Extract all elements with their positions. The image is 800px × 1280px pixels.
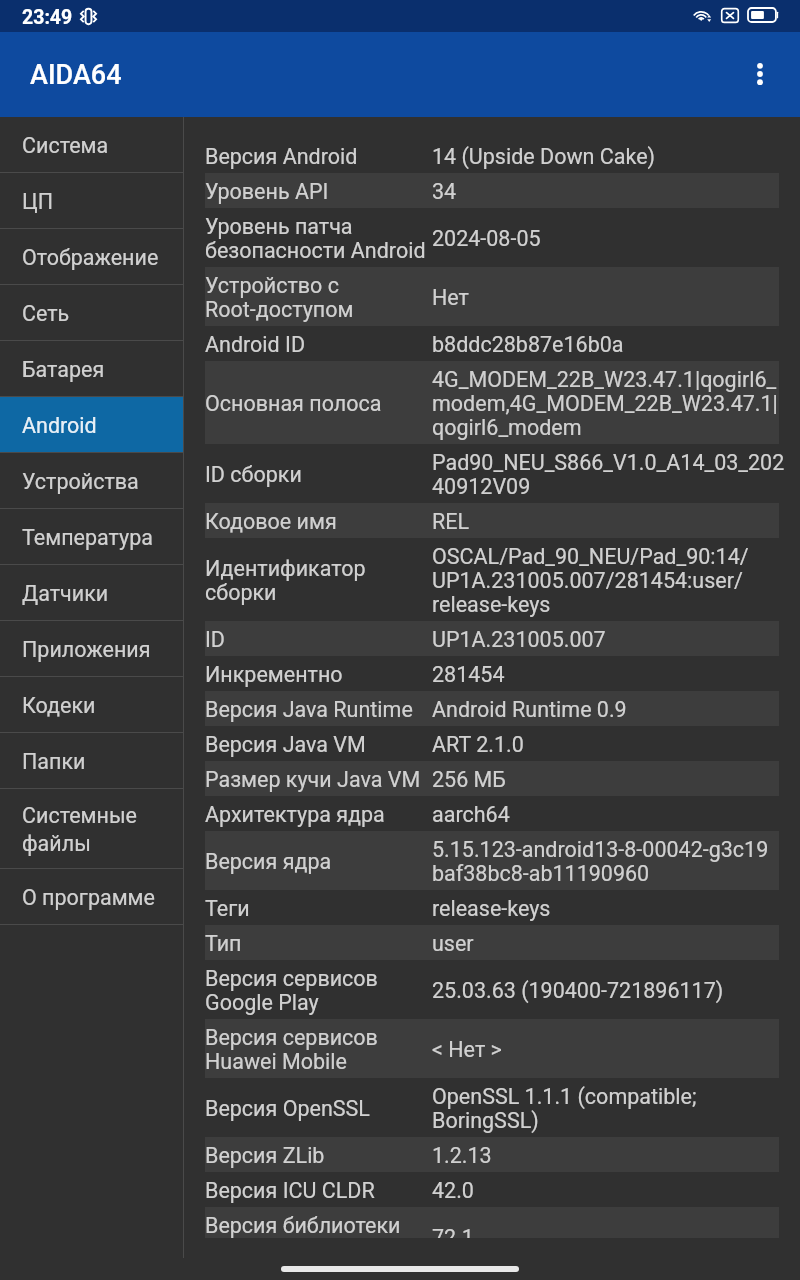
staticText: REL — [432, 509, 470, 533]
staticText: Android Runtime 0.9 — [432, 697, 627, 721]
button[interactable]: Версия сервисов — [205, 1019, 779, 1078]
button[interactable]: Тип — [205, 925, 779, 960]
button[interactable]: Кодеки — [0, 677, 184, 732]
staticText: Android ID — [205, 332, 306, 356]
button[interactable]: Устройства — [0, 453, 184, 508]
staticText: OSCAL/Pad_90_NEU/Pad_90:14/ — [432, 544, 749, 568]
staticText: 34 — [432, 179, 457, 203]
staticText: Версия Java VM — [205, 732, 366, 756]
staticText: Устройства — [22, 469, 139, 494]
button[interactable]: Уровень API — [205, 173, 779, 208]
staticText: 14 (Upside Down Cake) — [432, 144, 656, 168]
staticText: ART 2.1.0 — [432, 732, 524, 756]
staticText: 40912V09 — [432, 474, 531, 498]
staticText: О программе — [22, 885, 155, 910]
staticText: qogirl6_modem — [432, 415, 582, 439]
staticText: 256 МБ — [432, 767, 506, 791]
staticText: Тип — [205, 931, 242, 955]
staticText: baf38bc8-ab11190960 — [432, 861, 650, 885]
staticText: 42.0 — [432, 1178, 474, 1202]
staticText: Версия ядра — [205, 849, 332, 873]
staticText: сборки — [205, 580, 277, 604]
button[interactable]: Android — [0, 397, 184, 452]
button[interactable]: Температура — [0, 509, 184, 564]
staticText: Уровень патча — [205, 214, 353, 238]
staticText: user — [432, 931, 474, 955]
staticText: 2024-08-05 — [432, 226, 541, 250]
button[interactable]: ЦП — [0, 173, 184, 228]
staticText: Версия сервисов — [205, 966, 378, 990]
staticText: UP1A.231005.007 — [432, 627, 606, 651]
staticText: Pad90_NEU_S866_V1.0_A14_03_202 — [432, 450, 775, 474]
button[interactable]: Уровень патча — [205, 208, 779, 267]
staticText: Архитектура ядра — [205, 802, 385, 826]
button[interactable]: Версия библиотеки — [205, 1207, 779, 1238]
button[interactable]: Версия Java Runtime — [205, 691, 779, 726]
button[interactable]: Кодовое имя — [205, 503, 779, 538]
staticText: Датчики — [22, 581, 109, 606]
button[interactable]: О программе — [0, 869, 184, 924]
staticText: ID — [205, 627, 225, 651]
staticText: Версия OpenSSL — [205, 1096, 370, 1120]
button[interactable]: Система — [0, 117, 184, 172]
staticText: Температура — [22, 525, 153, 550]
button[interactable]: Основная полоса — [205, 361, 779, 444]
button[interactable]: More options — [732, 43, 788, 105]
staticText: безопасности Android — [205, 238, 426, 262]
staticText: Размер кучи Java VM — [205, 767, 421, 791]
staticText: Сеть — [22, 301, 70, 326]
staticText: Батарея — [22, 357, 105, 382]
staticText: Теги — [205, 896, 250, 920]
button[interactable]: Версия Android — [205, 138, 779, 173]
button[interactable]: Сеть — [0, 285, 184, 340]
staticText: < Нет > — [432, 1037, 502, 1061]
button[interactable]: ID — [205, 621, 779, 656]
button[interactable]: Версия OpenSSL — [205, 1078, 779, 1137]
button[interactable]: Версия Java VM — [205, 726, 779, 761]
button[interactable]: Теги — [205, 890, 779, 925]
button[interactable]: Версия ICU CLDR — [205, 1172, 779, 1207]
button[interactable]: Идентификатор — [205, 538, 779, 621]
staticText: Версия Java Runtime — [205, 697, 413, 721]
staticText: AIDA64 — [30, 59, 122, 91]
staticText: ID сборки — [205, 462, 302, 486]
staticText: ICU — [205, 1237, 239, 1238]
staticText: Уровень API — [205, 179, 329, 203]
staticText: modem,4G_MODEM_22B_W23.47.1| — [432, 391, 775, 415]
staticText: Основная полоса — [205, 391, 382, 415]
button[interactable]: Датчики — [0, 565, 184, 620]
staticText: Папки — [22, 749, 86, 774]
staticText: Кодовое имя — [205, 509, 337, 533]
staticText: Система — [22, 133, 109, 158]
staticText: aarch64 — [432, 802, 510, 826]
staticText: BoringSSL) — [432, 1108, 539, 1132]
button[interactable]: Архитектура ядра — [205, 796, 779, 831]
staticText: Root-доступом — [205, 297, 354, 321]
button[interactable]: Устройство с — [205, 267, 779, 326]
button[interactable]: Системные — [0, 789, 184, 868]
staticText: OpenSSL 1.1.1 (compatible; — [432, 1084, 697, 1108]
staticText: 23:49 — [22, 6, 73, 29]
staticText: Версия библиотеки — [205, 1213, 401, 1237]
staticText: b8ddc28b87e16b0a — [432, 332, 624, 356]
button[interactable]: Батарея — [0, 341, 184, 396]
button[interactable]: Версия сервисов — [205, 960, 779, 1019]
button[interactable]: Инкрементно — [205, 656, 779, 691]
button[interactable]: Приложения — [0, 621, 184, 676]
button[interactable]: ID сборки — [205, 444, 779, 503]
staticText: 5.15.123-android13-8-00042-g3c19 — [432, 837, 769, 861]
staticText: 281454 — [432, 662, 505, 686]
staticText: UP1A.231005.007/281454:user/ — [432, 568, 743, 592]
button[interactable]: Папки — [0, 733, 184, 788]
staticText: Кодеки — [22, 693, 96, 718]
button[interactable]: Отображение — [0, 229, 184, 284]
button[interactable]: Версия ядра — [205, 831, 779, 890]
staticText: 72.1 — [432, 1225, 474, 1238]
staticText: 25.03.63 (190400-721896117) — [432, 978, 724, 1002]
button[interactable]: Android ID — [205, 326, 779, 361]
staticText: Приложения — [22, 637, 151, 662]
staticText: Huawei Mobile — [205, 1049, 347, 1073]
staticText: Версия сервисов — [205, 1025, 378, 1049]
button[interactable]: Размер кучи Java VM — [205, 761, 779, 796]
button[interactable]: Версия ZLib — [205, 1137, 779, 1172]
